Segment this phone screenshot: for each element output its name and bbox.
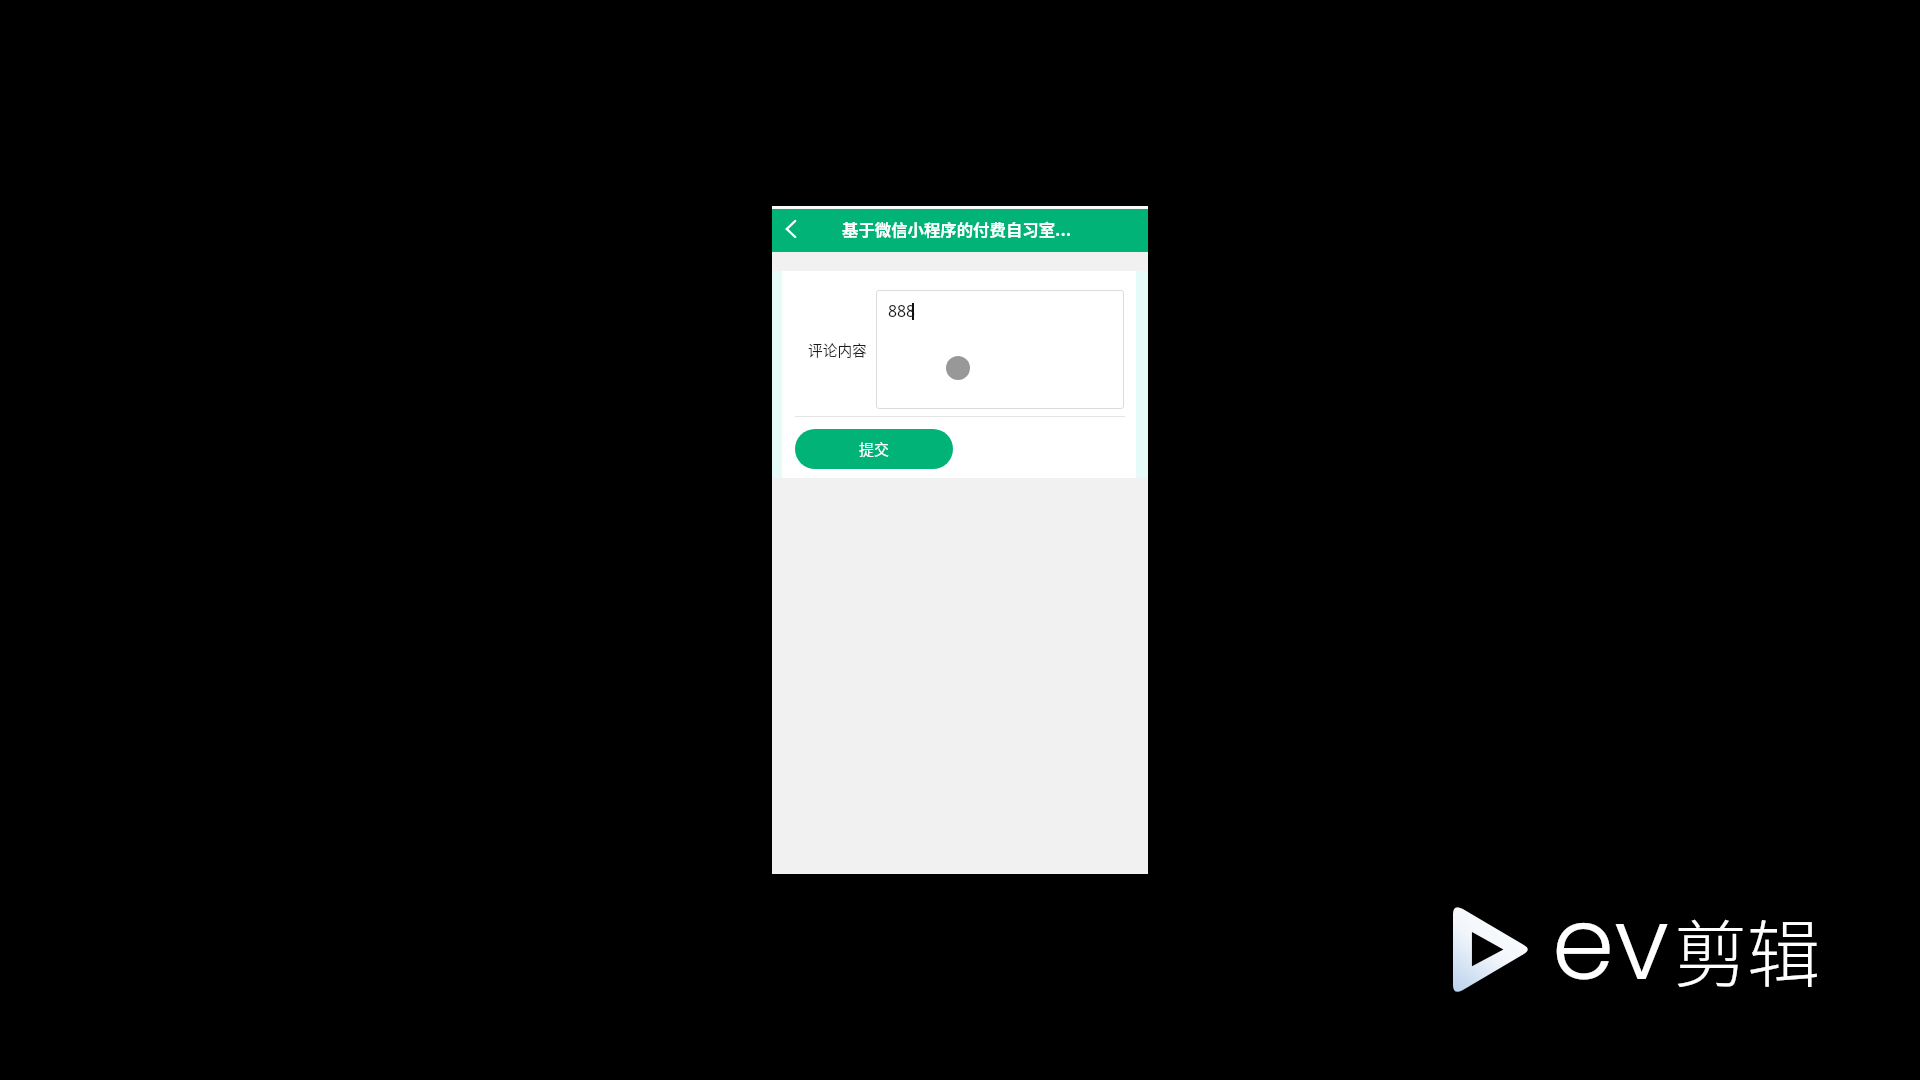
staticText: 888 [888,300,916,322]
staticText: ev [1552,874,1669,1014]
staticText: 评论内容 [808,339,867,360]
staticText: 基于微信小程序的付费自习室... [842,217,1072,241]
button[interactable]: 提交 [795,429,953,469]
staticText: 提交 [859,438,890,460]
button[interactable]: 评论内容输入框 [876,290,1124,409]
button[interactable]: Back [774,211,810,247]
staticText: 剪辑 [1674,896,1820,1002]
